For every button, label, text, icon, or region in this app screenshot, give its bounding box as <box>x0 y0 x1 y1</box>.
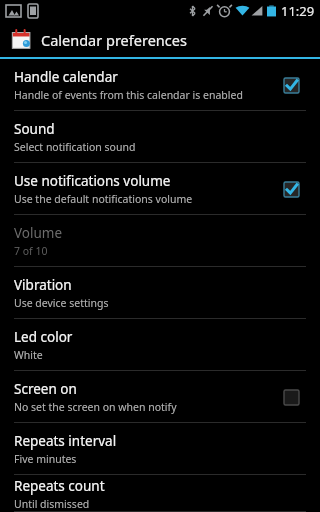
button[interactable]: Screen on <box>276 382 306 412</box>
staticText: Five minutes <box>14 452 77 466</box>
button[interactable]: Sound <box>0 111 320 163</box>
button[interactable]: Repeats interval <box>0 423 320 475</box>
button[interactable]: Use notifications volume <box>0 163 320 215</box>
button[interactable]: Screen on <box>0 371 320 423</box>
staticText: White <box>14 348 43 362</box>
staticText: Until dismissed <box>14 497 90 511</box>
staticText: Select notification sound <box>14 140 136 154</box>
staticText: Repeats count <box>14 477 105 495</box>
staticText: Led color <box>14 328 73 346</box>
button[interactable]: Repeats count <box>0 475 320 512</box>
staticText: 7 of 10 <box>14 244 48 258</box>
staticText: Use device settings <box>14 296 109 310</box>
staticText: Use the default notifications volume <box>14 192 193 206</box>
staticText: Volume <box>14 224 63 242</box>
button[interactable]: Handle calendar <box>276 70 306 100</box>
staticText: 11:29 <box>281 2 315 20</box>
staticText: Handle calendar <box>14 68 118 86</box>
button[interactable]: Volume <box>0 215 320 267</box>
staticText: No set the screen on when notify <box>14 400 177 414</box>
staticText: Calendar preferences <box>41 30 187 50</box>
button[interactable]: Handle calendar <box>0 59 320 111</box>
button[interactable]: Led color <box>0 319 320 371</box>
staticText: Vibration <box>14 276 72 294</box>
staticText: Handle of events from this calendar is e… <box>14 88 243 102</box>
staticText: Sound <box>14 120 55 138</box>
button[interactable]: Vibration <box>0 267 320 319</box>
staticText: Screen on <box>14 380 77 398</box>
staticText: Repeats interval <box>14 432 117 450</box>
staticText: Use notifications volume <box>14 172 171 190</box>
button[interactable]: Use notifications volume <box>276 174 306 204</box>
